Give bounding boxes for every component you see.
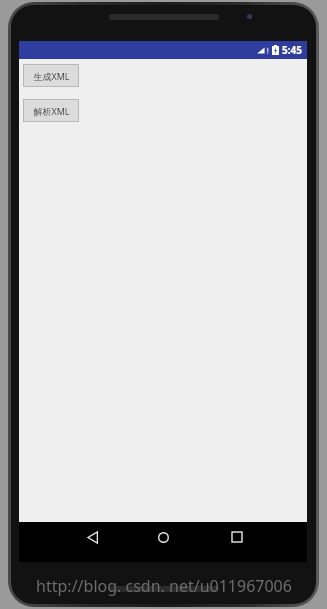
button[interactable]: 生成XML — [23, 64, 79, 87]
staticText: 解析XML — [33, 105, 70, 117]
button[interactable]: Back — [67, 522, 119, 552]
button[interactable]: 解析XML — [23, 99, 79, 122]
button[interactable]: Recent apps — [211, 522, 263, 552]
staticText: http://blog. csdn. net/u011967006 — [36, 575, 292, 597]
button[interactable]: Home — [137, 522, 189, 552]
staticText: 生成XML — [33, 70, 70, 82]
staticText: 5:45 — [282, 43, 302, 57]
